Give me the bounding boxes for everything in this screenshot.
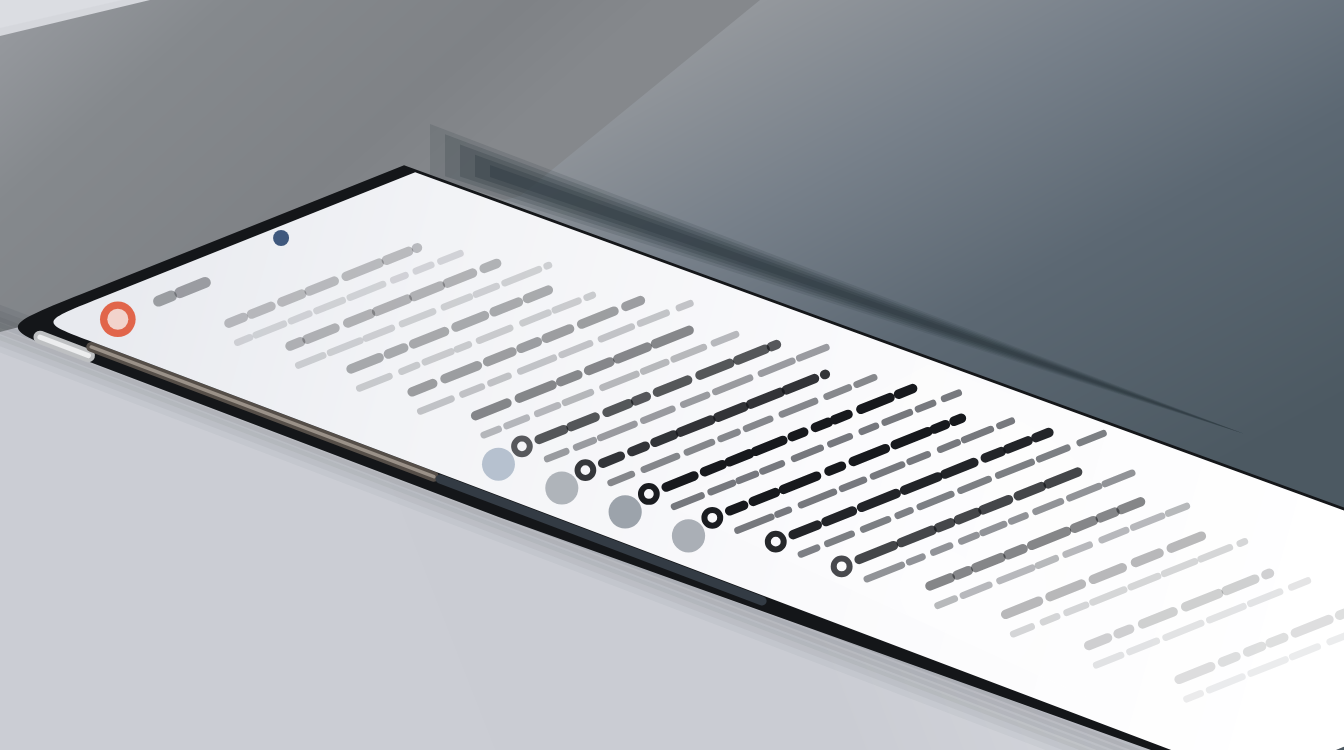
- button[interactable]: Android phone inbox screen on a desk: [0, 0, 1344, 750]
